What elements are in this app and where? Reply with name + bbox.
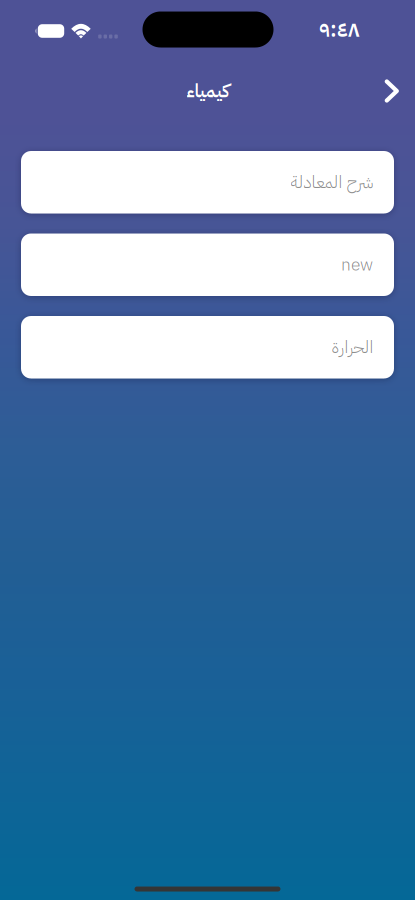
button[interactable]: Back xyxy=(371,71,415,111)
button[interactable]: شرح المعادلة xyxy=(21,151,394,213)
staticText: الحرارة xyxy=(331,334,373,360)
button[interactable]: new xyxy=(21,233,394,296)
staticText: كيمياء xyxy=(186,77,229,105)
button[interactable]: الحرارة xyxy=(21,316,394,378)
staticText: new xyxy=(341,252,373,278)
staticText: شرح المعادلة xyxy=(290,169,373,195)
staticText: ٩:٤٨ xyxy=(319,13,360,45)
